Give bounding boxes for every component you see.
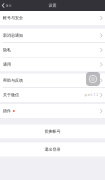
- staticText: 新消息通知: [3, 33, 23, 38]
- button[interactable]: 退出登录: [0, 142, 105, 156]
- staticText: 帮助与反馈: [3, 78, 23, 83]
- staticText: 关于微信: [3, 92, 19, 97]
- button[interactable]: 帮助与反馈: [0, 73, 105, 87]
- staticText: 通用: [3, 62, 11, 67]
- button[interactable]: 隐私: [0, 43, 105, 57]
- staticText: 隐私: [3, 47, 11, 52]
- staticText: 版本6.7.2: [84, 93, 98, 97]
- button[interactable]: 关于微信: [0, 88, 105, 102]
- button[interactable]: 通用: [0, 57, 105, 71]
- staticText: 帐号与安全: [3, 15, 23, 20]
- button[interactable]: 新消息通知: [0, 28, 105, 42]
- staticText: 退出登录: [44, 147, 60, 152]
- button[interactable]: 切换帐号: [0, 124, 105, 138]
- staticText: 插件: [3, 108, 11, 113]
- button[interactable]: 插件: [0, 104, 105, 118]
- staticText: 切换帐号: [44, 129, 60, 134]
- staticText: 微信: [6, 4, 12, 7]
- staticText: 设置: [48, 3, 56, 8]
- button[interactable]: 帐号与安全: [0, 11, 105, 25]
- button[interactable]: Back to WeChat: [0, 0, 15, 11]
